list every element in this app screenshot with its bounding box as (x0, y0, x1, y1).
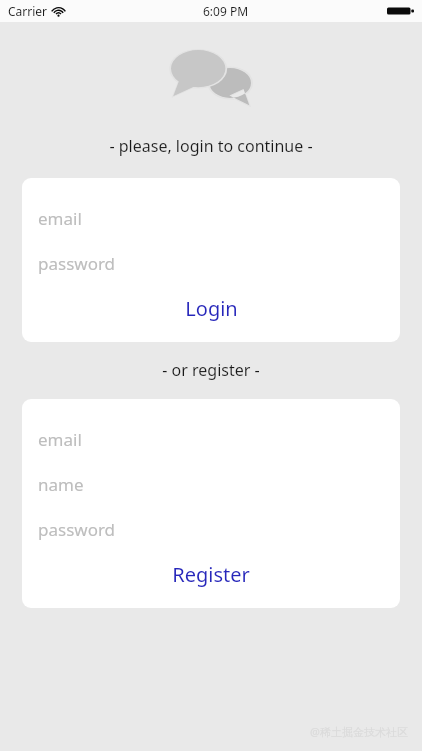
staticText: password (38, 252, 116, 275)
staticText: name (38, 473, 84, 496)
other: Battery full (387, 5, 414, 17)
staticText: @稀土掘金技术社区 (310, 724, 408, 739)
button[interactable]: password (22, 241, 400, 286)
button[interactable]: Login (22, 286, 400, 330)
staticText: Carrier (8, 3, 48, 19)
staticText: Register (172, 561, 250, 588)
button[interactable]: email (22, 196, 400, 241)
button[interactable]: password (22, 507, 400, 552)
staticText: - or register - (162, 359, 260, 381)
other: Wi-Fi signal (52, 6, 65, 17)
other: Chat app logo (171, 50, 251, 110)
staticText: 6:09 PM (203, 3, 249, 19)
staticText: - please, login to continue - (109, 135, 313, 157)
button[interactable]: email (22, 417, 400, 462)
button[interactable]: name (22, 462, 400, 507)
staticText: Login (185, 295, 238, 322)
staticText: email (38, 207, 82, 230)
staticText: password (38, 518, 116, 541)
button[interactable]: Register (22, 552, 400, 596)
staticText: email (38, 428, 82, 451)
